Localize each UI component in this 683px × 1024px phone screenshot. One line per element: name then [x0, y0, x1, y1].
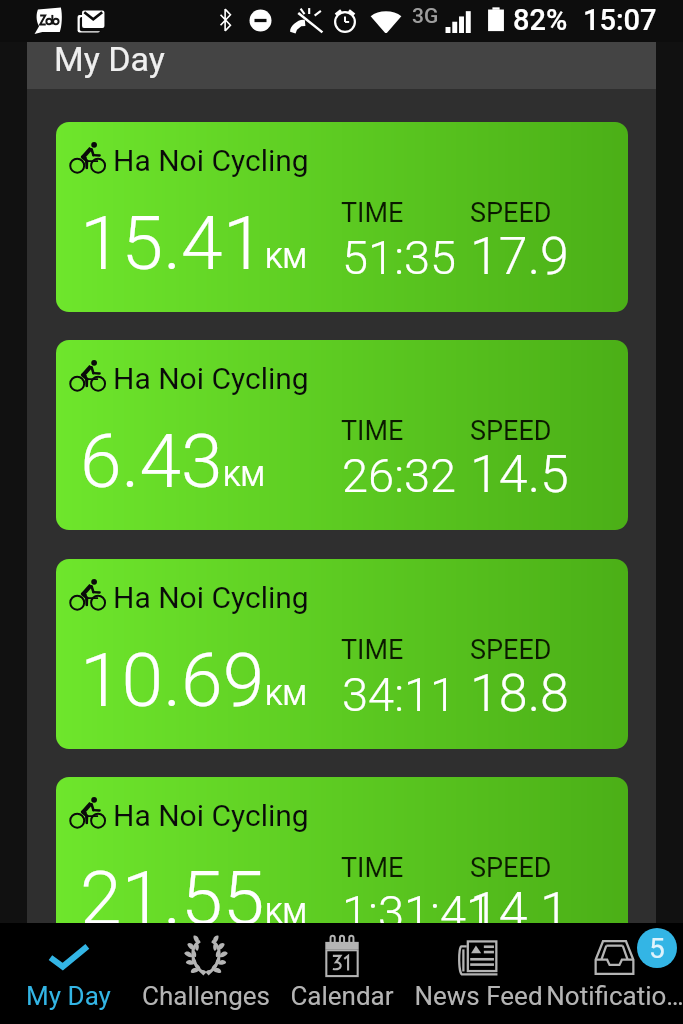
staticText: 34:11	[342, 667, 457, 722]
staticText: 17.9	[470, 226, 569, 287]
button[interactable]: News Feed	[410, 923, 547, 1024]
staticText: TIME	[341, 197, 404, 229]
staticText: Challenges	[142, 981, 270, 1011]
staticText: 1:31:41	[342, 885, 493, 940]
button[interactable]: Calendar	[273, 923, 410, 1024]
staticText: Ha Noi Cycling	[113, 580, 309, 615]
staticText: TIME	[341, 634, 404, 666]
staticText: News Feed	[414, 981, 543, 1011]
staticText: My Day	[26, 981, 111, 1011]
staticText: 14.5	[470, 444, 569, 505]
staticText: KM	[265, 242, 308, 275]
staticText: SPEED	[470, 197, 552, 229]
button[interactable]: My Day	[27, 42, 656, 89]
staticText: 15:07	[583, 3, 657, 37]
staticText: 26:32	[342, 448, 457, 503]
staticText: KM	[223, 460, 266, 493]
button[interactable]: Challenges	[137, 923, 274, 1024]
staticText: 10.69	[80, 636, 265, 724]
staticText: Ha Noi Cycling	[113, 361, 309, 396]
staticText: TIME	[341, 852, 404, 884]
staticText: 21.55	[80, 854, 265, 942]
staticText: 18.8	[470, 663, 569, 724]
button[interactable]: Ha Noi Cycling	[56, 122, 628, 312]
staticText: SPEED	[470, 634, 552, 666]
button[interactable]: My Day	[0, 923, 137, 1024]
staticText: 3G	[412, 4, 439, 29]
button[interactable]: Ha Noi Cycling	[56, 559, 628, 749]
staticText: SPEED	[470, 852, 552, 884]
staticText: SPEED	[470, 415, 552, 447]
staticText: 14.1	[470, 881, 569, 942]
button[interactable]: Ha Noi Cycling	[56, 340, 628, 530]
staticText: Ha Noi Cycling	[113, 798, 309, 833]
staticText: My Day	[54, 39, 165, 79]
staticText: 5	[649, 932, 665, 965]
staticText: Notificatio…	[546, 981, 683, 1011]
staticText: TIME	[341, 415, 404, 447]
staticText: 15.41	[80, 199, 265, 287]
staticText: 51:35	[342, 230, 457, 285]
staticText: KM	[265, 679, 308, 712]
staticText: KM	[265, 897, 308, 930]
staticText: Ha Noi Cycling	[113, 143, 309, 178]
button[interactable]: Notificatio…	[546, 923, 683, 1024]
button[interactable]: Ha Noi Cycling	[56, 777, 628, 967]
staticText: Calendar	[290, 981, 394, 1011]
staticText: 6.43	[80, 417, 223, 505]
staticText: 82%	[513, 3, 568, 37]
